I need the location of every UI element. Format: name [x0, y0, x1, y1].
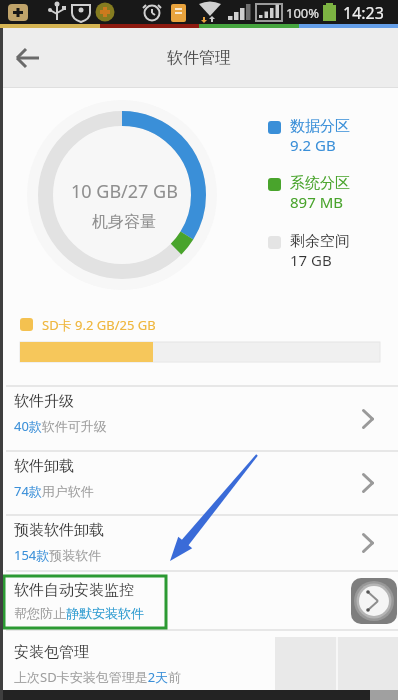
button[interactable]: 预装软件卸载	[0, 516, 398, 570]
staticText: 预装软件卸载	[14, 521, 104, 540]
staticText: 17 GB	[290, 250, 332, 270]
staticText: 上次SD卡安装包管理是2天前	[14, 668, 182, 686]
staticText: 帮您防止静默安装软件	[14, 605, 144, 621]
staticText: SD卡 9.2 GB/25 GB	[42, 316, 156, 334]
staticText: 剩余空间	[290, 232, 350, 251]
staticText: 安装包管理	[14, 643, 89, 662]
button[interactable]: 安装包管理	[0, 631, 398, 690]
staticText: 软件管理	[167, 48, 231, 68]
staticText: 40款软件可升级	[14, 417, 107, 435]
staticText: 100%	[286, 4, 320, 22]
staticText: 9.2 GB	[290, 135, 336, 155]
button[interactable]: 软件升级	[0, 387, 398, 450]
staticText: 系统分区	[290, 174, 350, 193]
staticText: 74款用户软件	[14, 482, 94, 500]
staticText: 14:23	[343, 2, 384, 24]
staticText: 软件自动安装监控	[14, 581, 134, 600]
button[interactable]: 软件自动安装监控	[0, 572, 398, 629]
staticText: 10 GB/27 GB	[71, 179, 178, 204]
staticText: 897 MB	[290, 192, 343, 212]
staticText: 机身容量	[92, 212, 156, 232]
button[interactable]	[351, 578, 397, 624]
staticText: 数据分区	[290, 117, 350, 136]
staticText: 软件卸载	[14, 457, 74, 476]
staticText: 154款预装软件	[14, 546, 102, 564]
button[interactable]: 软件卸载	[0, 452, 398, 514]
button[interactable]	[0, 28, 56, 88]
staticText: 软件升级	[14, 392, 74, 411]
